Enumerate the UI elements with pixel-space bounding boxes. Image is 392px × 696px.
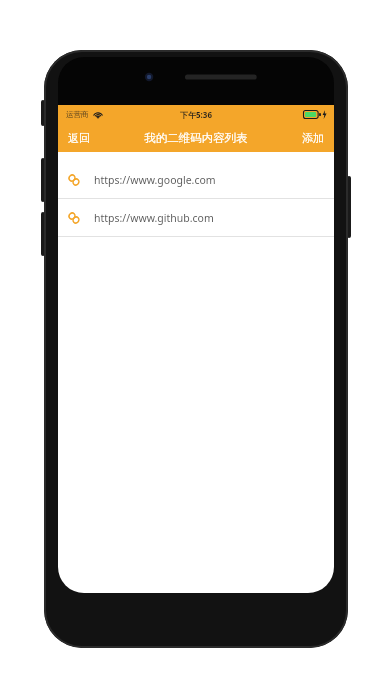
button[interactable]: Link xyxy=(58,161,334,198)
staticText: 我的二维码内容列表 xyxy=(144,131,248,145)
button[interactable]: Link xyxy=(58,199,334,236)
staticText: https://www.github.com xyxy=(94,211,214,225)
staticText: 返回 xyxy=(68,131,90,145)
other: Link xyxy=(67,211,81,225)
button[interactable]: 返回 xyxy=(58,126,100,150)
staticText: https://www.google.com xyxy=(94,173,216,187)
staticText: 添加 xyxy=(302,131,324,145)
staticText: 运营商 xyxy=(66,110,89,119)
button[interactable]: 添加 xyxy=(292,126,334,150)
other: Link xyxy=(67,173,81,187)
staticText: 下午5:36 xyxy=(180,109,212,120)
